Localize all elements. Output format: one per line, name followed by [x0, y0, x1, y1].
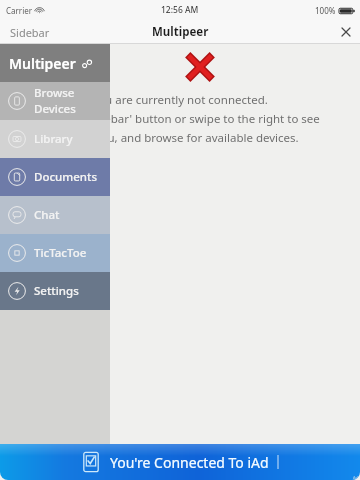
button[interactable]: Documents: [0, 158, 110, 196]
staticText: Browse Devices: [34, 85, 110, 117]
button[interactable]: Sidebar: [0, 20, 60, 44]
staticText: Ad: [353, 475, 359, 480]
button[interactable]: Close: [332, 20, 360, 44]
staticText: Documents: [34, 169, 97, 185]
button[interactable]: You're Connected To iAd advertisement: [0, 444, 360, 480]
staticText: the menu, and browse for available devic…: [62, 130, 299, 146]
staticText: You are currently not connected.: [92, 92, 268, 108]
staticText: Use the 'Sidebar' button or swipe to the…: [41, 111, 320, 127]
staticText: 100%: [315, 5, 336, 16]
staticText: 12:56 AM: [161, 4, 199, 16]
button[interactable]: Chat: [0, 196, 110, 234]
staticText: Chat: [34, 207, 60, 223]
button[interactable]: TicTacToe: [0, 234, 110, 272]
staticText: Multipeer: [9, 54, 76, 73]
staticText: Sidebar: [10, 25, 50, 40]
button[interactable]: Settings: [0, 272, 110, 310]
staticText: Carrier: [6, 5, 33, 16]
staticText: Library: [34, 131, 73, 147]
staticText: You're Connected To iAd: [110, 453, 269, 472]
staticText: TicTacToe: [34, 245, 87, 261]
button[interactable]: Library: [0, 120, 110, 158]
staticText: Multipeer: [152, 24, 209, 40]
button[interactable]: Browse Devices: [0, 82, 110, 120]
staticText: Settings: [34, 283, 79, 299]
